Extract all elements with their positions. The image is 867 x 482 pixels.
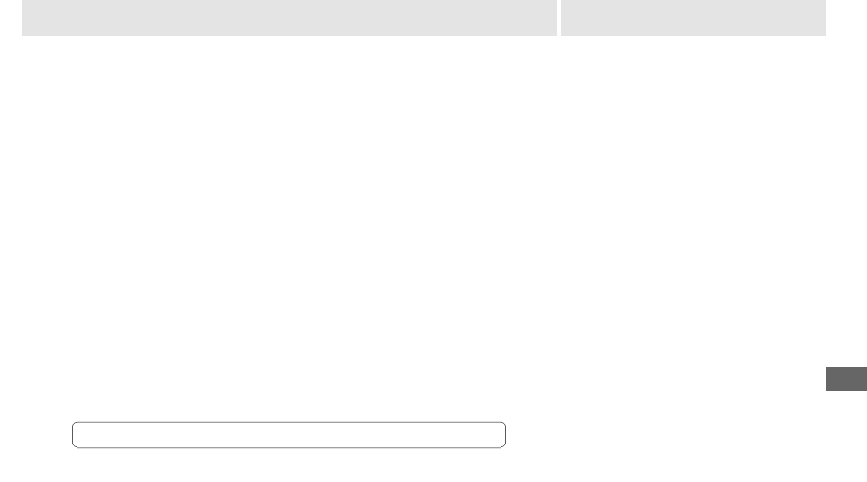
button[interactable]: Text input field (72, 421, 506, 449)
